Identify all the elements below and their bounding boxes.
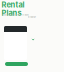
staticText: Rental <box>1 0 24 9</box>
staticText: Plans <box>1 9 21 18</box>
staticText: Flexible monthly leases <box>1 13 28 16</box>
staticText: Browse <box>27 16 35 19</box>
